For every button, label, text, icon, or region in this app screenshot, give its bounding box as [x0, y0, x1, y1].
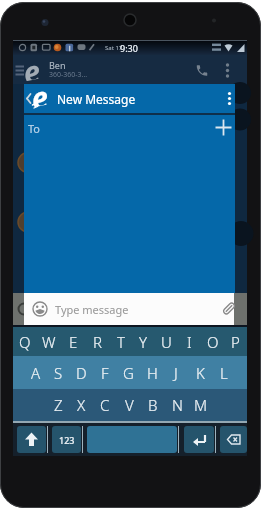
staticText: F — [101, 363, 109, 383]
button[interactable]: To — [24, 115, 235, 141]
staticText: Q — [19, 332, 31, 352]
staticText: New Message — [57, 91, 136, 107]
button[interactable]: G — [116, 356, 140, 389]
staticText: 123 — [59, 434, 75, 446]
staticText: K — [196, 363, 205, 383]
button[interactable]: e — [24, 84, 235, 113]
staticText: B — [148, 395, 158, 415]
button[interactable]: K — [188, 356, 212, 389]
staticText: To — [28, 121, 41, 136]
button[interactable]: I — [178, 327, 201, 356]
staticText: Type message — [55, 302, 129, 317]
button[interactable]: E — [61, 327, 85, 356]
button[interactable]: e — [13, 55, 247, 84]
staticText: C — [100, 395, 110, 415]
staticText: S — [54, 363, 63, 383]
button[interactable] — [17, 426, 46, 453]
staticText: Ben — [49, 59, 66, 71]
button[interactable]: R — [85, 327, 109, 356]
button[interactable]: J — [164, 356, 188, 389]
staticText: 360-360-3... — [49, 70, 88, 80]
staticText: U — [161, 332, 172, 352]
button[interactable]: Q — [13, 327, 37, 356]
button[interactable]: N — [165, 389, 189, 421]
staticText: I — [187, 332, 192, 352]
button[interactable]: W — [37, 327, 61, 356]
staticText: V — [125, 395, 134, 415]
staticText: X — [77, 395, 86, 415]
staticText: A — [31, 363, 41, 383]
staticText: e — [19, 49, 42, 81]
staticText: P — [231, 332, 240, 352]
button[interactable]: O — [201, 327, 224, 356]
button[interactable]: S — [47, 356, 70, 389]
staticText: T — [117, 332, 125, 352]
button[interactable]: D — [70, 356, 93, 389]
button[interactable]: 123 — [52, 426, 81, 453]
button[interactable]: X — [70, 389, 93, 421]
button[interactable]: L — [212, 356, 236, 389]
button[interactable] — [87, 426, 177, 453]
button[interactable] — [220, 426, 247, 453]
button[interactable]: B — [141, 389, 165, 421]
button[interactable]: Y — [132, 327, 155, 356]
staticText: G — [123, 363, 134, 383]
staticText: e — [27, 75, 50, 107]
staticText: D — [76, 363, 87, 383]
button[interactable]: P — [224, 327, 247, 356]
button[interactable]: F — [93, 356, 116, 389]
staticText: M — [194, 395, 208, 415]
staticText: E — [69, 332, 78, 352]
staticText: R — [93, 332, 102, 352]
staticText: L — [220, 363, 228, 383]
staticText: N — [172, 395, 183, 415]
button[interactable]: T — [109, 327, 132, 356]
button[interactable]: M — [189, 389, 213, 421]
staticText: Z — [54, 395, 63, 415]
staticText: J — [174, 363, 178, 383]
button[interactable]: Type message — [24, 293, 234, 325]
staticText: Y — [139, 332, 148, 352]
button[interactable]: U — [155, 327, 178, 356]
staticText: Sat 17 — [105, 44, 123, 52]
button[interactable]: H — [140, 356, 164, 389]
button[interactable] — [184, 426, 214, 453]
staticText: W — [42, 332, 56, 352]
button[interactable]: Z — [47, 389, 70, 421]
staticText: 9:30 — [120, 42, 138, 54]
staticText: O — [207, 332, 219, 352]
button[interactable]: V — [117, 389, 141, 421]
button[interactable]: A — [24, 356, 47, 389]
staticText: H — [147, 363, 158, 383]
button[interactable]: C — [93, 389, 117, 421]
